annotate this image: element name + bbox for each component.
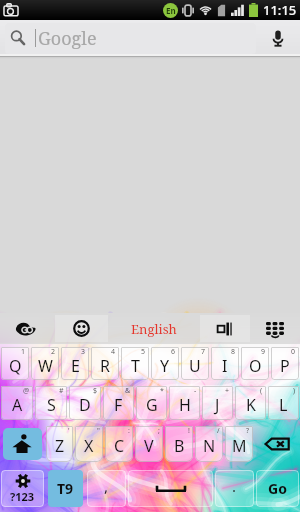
button[interactable]: A xyxy=(1,386,33,420)
staticText: G xyxy=(146,394,158,416)
button[interactable]: Comma xyxy=(87,470,126,507)
button[interactable]: Q xyxy=(1,347,29,380)
staticText: + xyxy=(225,386,230,396)
staticText: A xyxy=(12,394,23,416)
staticText: @ xyxy=(23,386,30,396)
staticText: I xyxy=(222,355,228,377)
staticText: 9 xyxy=(261,347,266,357)
staticText: Go xyxy=(268,479,287,498)
button[interactable]: Voice search xyxy=(256,20,300,56)
staticText: M xyxy=(232,435,247,457)
staticText: Y xyxy=(160,355,170,377)
staticText: / xyxy=(217,426,220,436)
button[interactable]: English xyxy=(110,315,198,342)
button[interactable]: T xyxy=(121,347,149,380)
staticText: 5 xyxy=(141,347,146,357)
button[interactable]: Go xyxy=(256,470,299,507)
staticText: . xyxy=(232,476,237,496)
staticText: : xyxy=(128,426,130,436)
staticText: O xyxy=(249,355,262,377)
button[interactable]: C xyxy=(105,426,133,462)
button[interactable]: U xyxy=(181,347,209,380)
button[interactable]: N xyxy=(195,426,223,462)
staticText: ; xyxy=(158,426,160,436)
button[interactable]: M xyxy=(225,426,253,462)
button[interactable]: Keyboard layout xyxy=(200,315,250,342)
button[interactable]: F xyxy=(103,386,134,420)
staticText: X xyxy=(84,435,94,457)
button[interactable]: Space xyxy=(128,470,213,507)
staticText: D xyxy=(79,394,91,416)
staticText: 4 xyxy=(111,347,116,357)
staticText: F xyxy=(114,394,123,416)
button[interactable]: R xyxy=(91,347,119,380)
button[interactable]: I xyxy=(211,347,239,380)
button[interactable]: Symbols xyxy=(1,470,44,507)
staticText: 6 xyxy=(171,347,176,357)
staticText: - xyxy=(194,386,197,396)
staticText: $ xyxy=(93,386,98,396)
staticText: K xyxy=(246,394,256,416)
button[interactable]: H xyxy=(169,386,200,420)
other: Camera xyxy=(2,1,20,19)
staticText: 3 xyxy=(81,347,86,357)
staticText: C xyxy=(114,435,125,457)
button[interactable]: Emoji xyxy=(55,315,108,342)
button[interactable]: T9 mode xyxy=(48,470,83,507)
staticText: * xyxy=(160,386,164,396)
staticText: S xyxy=(47,394,56,416)
staticText: R xyxy=(100,355,110,377)
staticText: English xyxy=(131,320,177,338)
staticText: # xyxy=(59,386,64,396)
staticText: En xyxy=(166,5,176,16)
button[interactable]: E xyxy=(61,347,89,380)
staticText: Google xyxy=(38,26,97,51)
staticText: , xyxy=(104,476,109,496)
staticText: J xyxy=(215,394,220,416)
button[interactable]: K xyxy=(235,386,266,420)
staticText: 7 xyxy=(201,347,206,357)
staticText: Q xyxy=(9,355,22,377)
staticText: 1 xyxy=(21,347,26,357)
button[interactable]: V xyxy=(135,426,163,462)
button[interactable]: B xyxy=(165,426,193,462)
staticText: E xyxy=(71,355,80,377)
button[interactable]: Y xyxy=(151,347,179,380)
staticText: Z xyxy=(55,435,65,457)
button[interactable]: Number keypad xyxy=(258,315,292,343)
staticText: P xyxy=(280,355,290,377)
button[interactable]: S xyxy=(35,386,67,420)
button[interactable]: O xyxy=(241,347,269,380)
staticText: W xyxy=(38,355,53,377)
staticText: U xyxy=(189,355,201,377)
button[interactable]: D xyxy=(69,386,101,420)
button[interactable]: P xyxy=(271,347,299,380)
button[interactable]: L xyxy=(268,386,299,420)
staticText: ! xyxy=(188,426,190,436)
button[interactable] xyxy=(5,23,256,54)
staticText: T xyxy=(131,355,140,377)
button[interactable]: J xyxy=(202,386,233,420)
staticText: V xyxy=(144,435,154,457)
button[interactable]: G xyxy=(136,386,167,420)
button[interactable]: Shift xyxy=(3,428,42,460)
staticText: ' xyxy=(68,426,70,436)
staticText: 2 xyxy=(51,347,56,357)
button[interactable]: GO keyboard menu xyxy=(8,315,42,343)
staticText: ) xyxy=(293,386,296,396)
staticText: T9 xyxy=(57,479,74,498)
button[interactable]: Z xyxy=(46,426,73,462)
staticText: N xyxy=(203,435,216,457)
button[interactable]: X xyxy=(75,426,103,462)
staticText: 0 xyxy=(291,347,296,357)
staticText: & xyxy=(125,386,131,396)
button[interactable]: W xyxy=(31,347,59,380)
staticText: L xyxy=(279,394,288,416)
staticText: ( xyxy=(260,386,263,396)
staticText: B xyxy=(174,435,185,457)
staticText: 11:15 xyxy=(263,1,297,19)
staticText: H xyxy=(179,394,191,416)
button[interactable]: Period xyxy=(215,470,254,507)
button[interactable]: Backspace xyxy=(257,428,297,460)
staticText: " xyxy=(97,426,100,436)
